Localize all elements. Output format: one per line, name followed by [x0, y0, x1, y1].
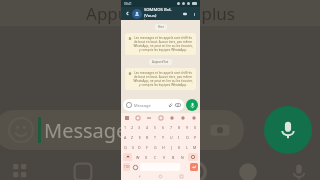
staticText: U: [170, 135, 173, 140]
staticText: 5: [154, 125, 157, 130]
button[interactable]: 2: [129, 122, 136, 132]
staticText: 1: [124, 125, 127, 130]
button[interactable]: Toolbar 1: [135, 115, 141, 121]
staticText: 2: [131, 125, 134, 130]
button[interactable]: Send voice message: [186, 99, 198, 111]
button[interactable]: Toolbar 5: [180, 115, 186, 121]
staticText: Y: [162, 135, 165, 140]
button[interactable]: Recents: [179, 174, 184, 179]
staticText: Aujourd'hui: [152, 60, 169, 64]
button[interactable]: Video call: [181, 9, 190, 18]
button[interactable]: 0: [191, 122, 199, 132]
button[interactable]: Toolbar 6: [191, 115, 197, 121]
staticText: R: [146, 135, 149, 140]
staticText: Z: [131, 135, 134, 140]
staticText: SOMMOS BnL (Vous): [144, 7, 181, 19]
button[interactable]: S: [129, 142, 136, 152]
staticText: 9: [186, 125, 189, 130]
button[interactable]: Shift: [123, 153, 132, 161]
button[interactable]: Message: [126, 99, 181, 111]
button[interactable]: Voice message: [264, 106, 312, 154]
button[interactable]: More options: [190, 10, 198, 18]
button[interactable]: 3: [136, 122, 143, 132]
staticText: O: [186, 135, 189, 140]
button[interactable]: 9: [183, 122, 191, 132]
button[interactable]: 7: [167, 122, 175, 132]
button[interactable]: C: [151, 152, 160, 162]
button[interactable]: A: [122, 132, 129, 142]
staticText: ?123: [124, 165, 130, 169]
button[interactable]: SOMMOS BnL (Vous): [144, 7, 181, 20]
staticText: I: [178, 135, 180, 140]
button[interactable]: Toolbar 3: [158, 115, 164, 121]
button[interactable]: Hier: [158, 25, 164, 29]
staticText: M: [193, 145, 197, 150]
button[interactable]: Aujourd'hui: [152, 60, 169, 64]
staticText: 8: [178, 125, 181, 130]
button[interactable]: G: [151, 142, 159, 152]
button[interactable]: Toolbar 0: [124, 115, 130, 121]
staticText: 6: [162, 125, 165, 130]
staticText: GIF: [128, 161, 155, 180]
button[interactable]: V: [160, 152, 169, 162]
staticText: F: [146, 145, 148, 150]
button[interactable]: Contact photo: [132, 9, 142, 19]
button[interactable]: X: [142, 152, 151, 162]
button[interactable]: Enter: [190, 163, 198, 171]
button[interactable]: Backspace: [188, 153, 198, 161]
button[interactable]: E: [136, 132, 143, 142]
button[interactable]: D: [136, 142, 143, 152]
button[interactable]: T: [151, 132, 159, 142]
staticText: S: [132, 145, 134, 150]
button[interactable]: 5: [151, 122, 159, 132]
button[interactable]: I: [175, 132, 183, 142]
staticText: D: [138, 145, 141, 150]
button[interactable]: Toolbar 2: [146, 115, 152, 121]
button[interactable]: O: [183, 132, 191, 142]
button[interactable]: 8: [175, 122, 183, 132]
button[interactable]: F: [143, 142, 151, 152]
staticText: 4: [146, 125, 149, 130]
staticText: Message: [44, 117, 128, 144]
button[interactable]: N: [178, 152, 187, 162]
button[interactable]: M: [191, 142, 199, 152]
staticText: Envoyez-vous un message: [144, 19, 179, 20]
button[interactable]: Home: [158, 174, 163, 179]
button[interactable]: Les messages et les appels sont chiffrés…: [128, 71, 193, 87]
staticText: K: [178, 145, 181, 150]
button[interactable]: Toolbar 4: [169, 115, 175, 121]
button[interactable]: Y: [159, 132, 167, 142]
button[interactable]: U: [167, 132, 175, 142]
button[interactable]: Z: [129, 132, 136, 142]
staticText: Hier: [158, 25, 164, 29]
button[interactable]: P: [191, 132, 199, 142]
staticText: A: [124, 135, 127, 140]
staticText: G: [154, 145, 157, 150]
button[interactable]: 6: [159, 122, 167, 132]
button[interactable]: L: [183, 142, 191, 152]
button[interactable]: R: [143, 132, 151, 142]
button[interactable]: 1: [122, 122, 129, 132]
staticText: C: [154, 155, 157, 160]
button[interactable]: J: [167, 142, 175, 152]
button[interactable]: Q: [122, 142, 129, 152]
button[interactable]: ?123: [123, 163, 130, 171]
button[interactable]: Back: [123, 9, 132, 18]
button[interactable]: Back: [137, 174, 142, 179]
button[interactable]: H: [159, 142, 167, 152]
button[interactable]: Les messages et les appels sont chiffrés…: [128, 36, 193, 52]
button[interactable]: W: [133, 152, 142, 162]
button[interactable]: Emoji: [132, 163, 138, 171]
staticText: Q: [124, 145, 127, 150]
staticText: T: [154, 135, 156, 140]
staticText: Les messages et les appels sont chiffrés…: [133, 71, 193, 87]
button[interactable]: K: [175, 142, 183, 152]
button[interactable]: 4: [143, 122, 151, 132]
staticText: 3: [138, 125, 141, 130]
button[interactable]: Message: [0, 110, 244, 150]
button[interactable]: B: [169, 152, 178, 162]
staticText: E: [139, 135, 141, 140]
staticText: W: [136, 155, 140, 160]
